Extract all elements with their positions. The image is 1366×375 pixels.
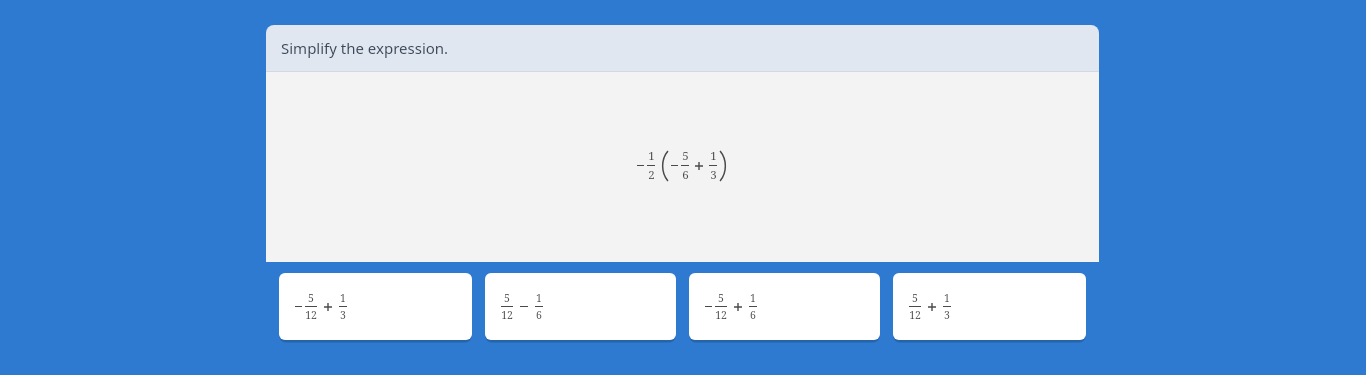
staticText: 6 [750, 308, 756, 322]
staticText: 3 [340, 308, 346, 322]
staticText: 1 [944, 291, 950, 305]
button[interactable]: 5 [689, 273, 880, 340]
staticText: 2 [648, 167, 655, 183]
staticText: 12 [715, 308, 727, 322]
staticText: 1 [710, 148, 717, 164]
staticText: 6 [682, 167, 689, 183]
staticText: 12 [305, 308, 317, 322]
staticText: 12 [909, 308, 921, 322]
staticText: Simplify the expression. [281, 38, 449, 58]
staticText: 1 [536, 291, 542, 305]
staticText: 1 [750, 291, 756, 305]
staticText: 12 [501, 308, 513, 322]
staticText: 5 [682, 148, 689, 164]
staticText: 5 [504, 291, 510, 305]
staticText: 3 [944, 308, 950, 322]
button[interactable]: 5 [279, 273, 472, 340]
staticText: 1 [340, 291, 346, 305]
staticText: 6 [536, 308, 542, 322]
staticText: 5 [912, 291, 918, 305]
staticText: 1 [648, 148, 655, 164]
button[interactable]: 5 [485, 273, 676, 340]
staticText: 5 [308, 291, 314, 305]
staticText: 5 [718, 291, 724, 305]
staticText: 3 [710, 167, 717, 183]
button[interactable]: 5 [893, 273, 1086, 340]
